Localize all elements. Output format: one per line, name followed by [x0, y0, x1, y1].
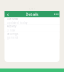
staticText: Details [25, 12, 38, 17]
staticText: Settings [7, 32, 18, 35]
button[interactable]: Overview [4, 17, 59, 24]
staticText: general [7, 36, 18, 39]
staticText: Activity [7, 24, 16, 28]
staticText: ‹ [7, 11, 9, 18]
button[interactable]: Back [6, 11, 10, 17]
staticText: ⋯ [53, 11, 58, 17]
button[interactable]: Settings [4, 32, 59, 39]
button[interactable]: More [54, 11, 58, 17]
staticText: updated today [7, 21, 27, 25]
button[interactable]: Activity [4, 25, 59, 32]
staticText: 3 new [7, 29, 15, 32]
staticText: Overview [7, 17, 18, 21]
